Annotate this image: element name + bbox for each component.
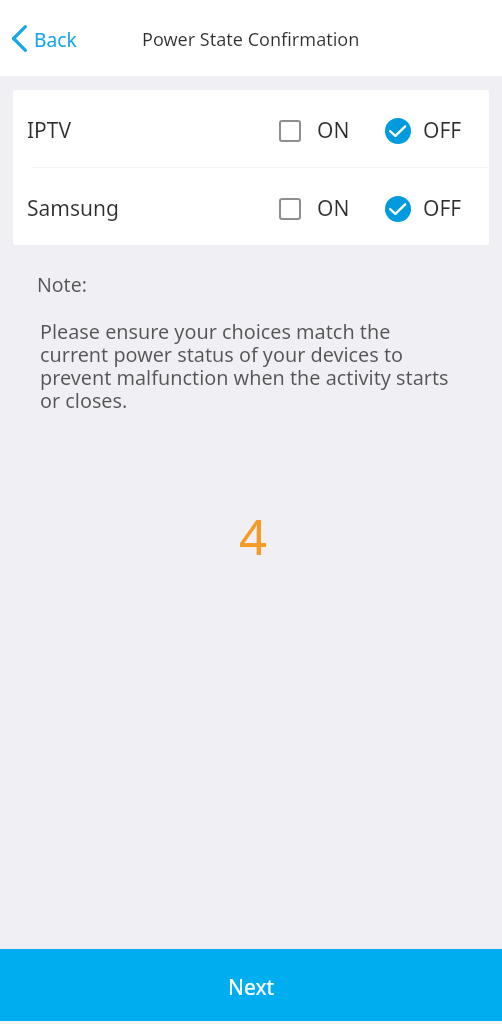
button[interactable]: Samsung power state OFF, checked [380,188,467,229]
staticText: ON [317,194,350,223]
staticText: Please ensure your choices match the cur… [40,318,452,414]
staticText: OFF [423,116,462,145]
button[interactable]: Samsung power state ON, unchecked [274,188,355,229]
staticText: Back [34,26,77,52]
staticText: Samsung [27,194,119,223]
button[interactable]: Next [0,949,502,1021]
button[interactable]: Back [9,19,80,58]
staticText: Power State Confirmation [142,27,360,52]
staticText: 4 [4,503,502,570]
staticText: IPTV [27,116,72,145]
staticText: ON [317,116,350,145]
other: Samsung power state ON, unchecked [279,198,301,220]
staticText: Note: [37,271,87,298]
button[interactable]: IPTV power state ON, unchecked [274,110,355,151]
staticText: Next [228,973,275,1002]
button[interactable]: IPTV power state OFF, checked [380,110,467,151]
other: Back [12,25,27,52]
other: IPTV power state OFF, checked [385,118,411,144]
staticText: OFF [423,194,462,223]
other: IPTV power state ON, unchecked [279,120,301,142]
other: Samsung power state OFF, checked [385,196,411,222]
